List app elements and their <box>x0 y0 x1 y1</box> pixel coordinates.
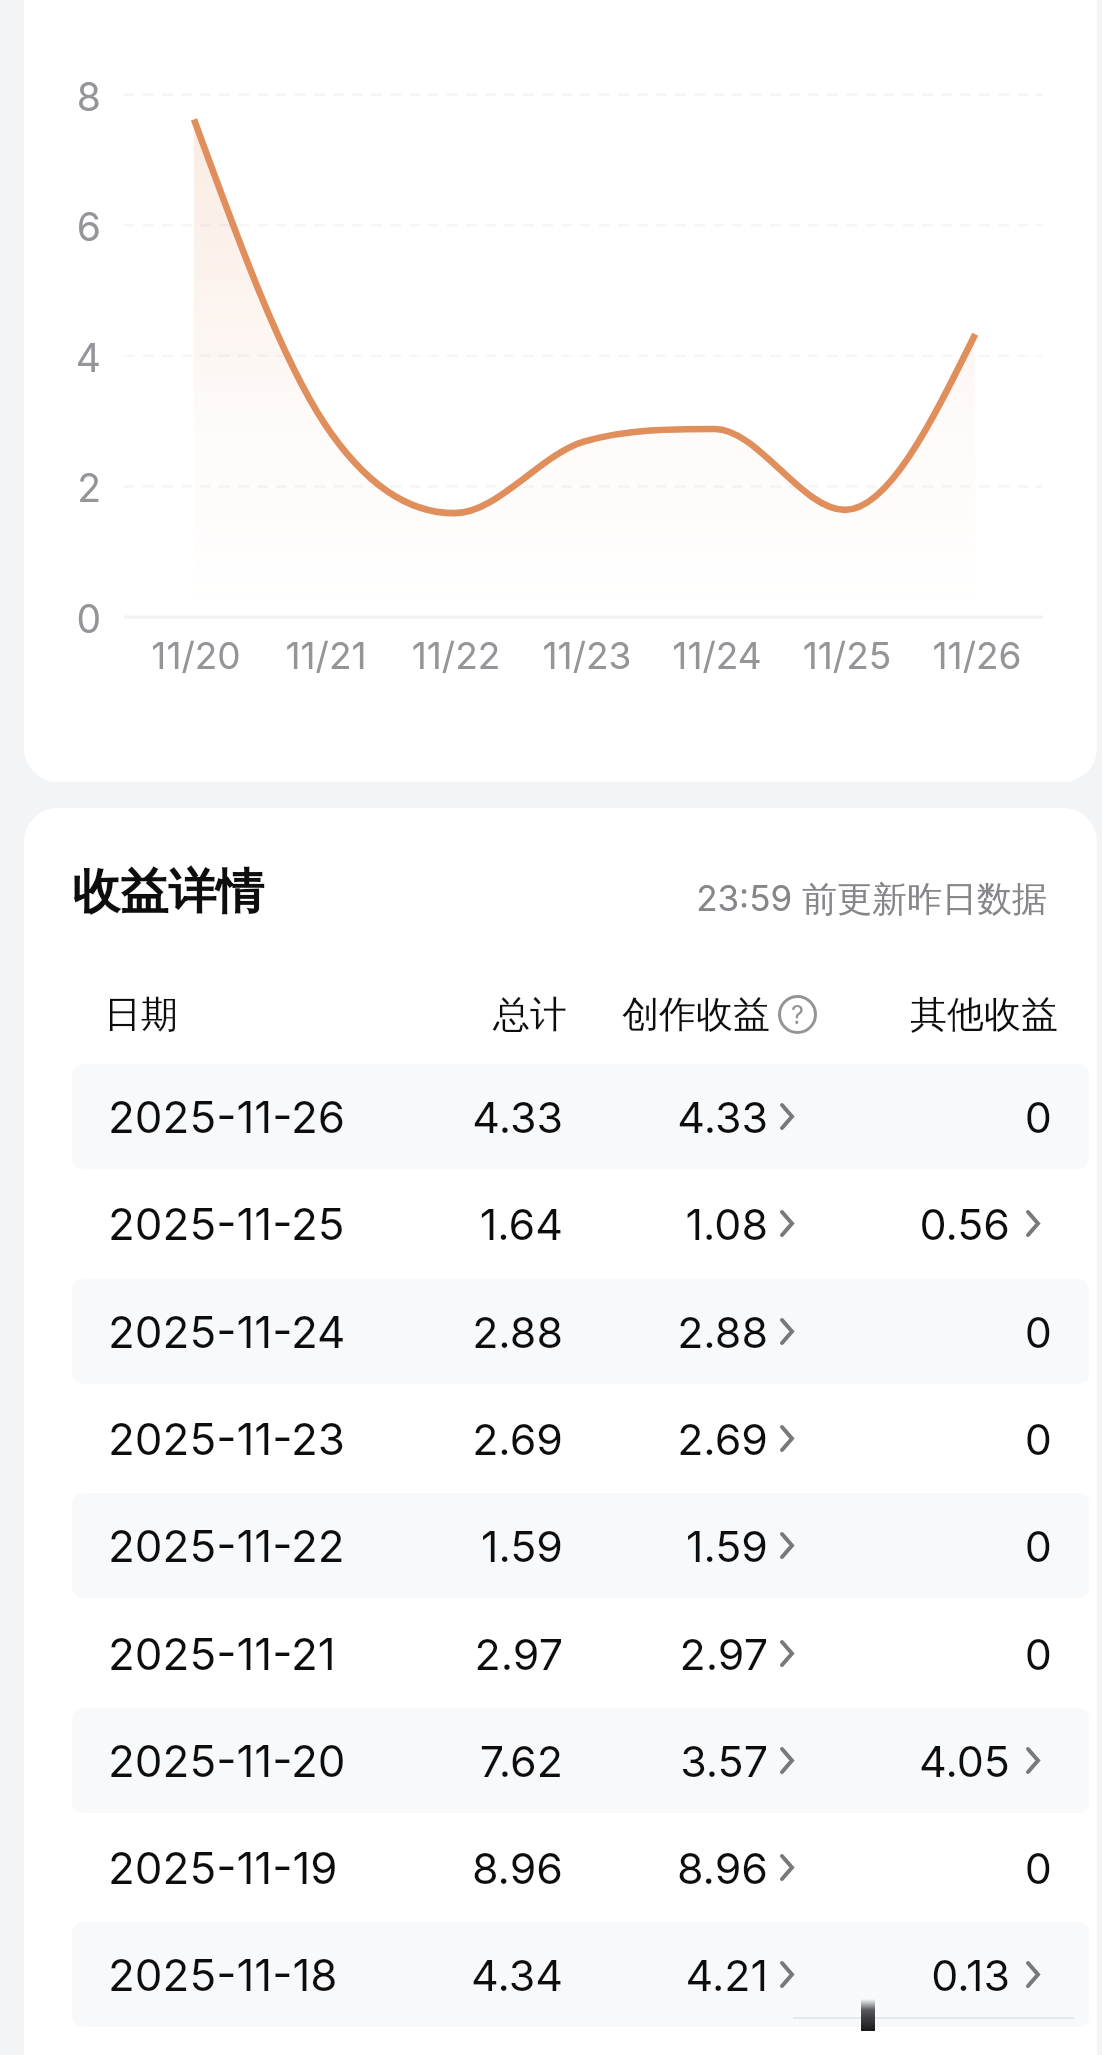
button[interactable]: 2025-11-21 <box>72 1601 1089 1706</box>
staticText: 4.05 <box>610 1735 1010 1787</box>
button[interactable]: 2025-11-19 <box>72 1815 1089 1920</box>
staticText: 0 <box>652 1413 1052 1465</box>
staticText: 0.13 <box>610 1949 1010 2001</box>
staticText: 4.33 <box>163 1091 563 1143</box>
staticText: 11/22 <box>386 633 526 678</box>
button[interactable]: 2025-11-23 <box>72 1386 1089 1491</box>
staticText: 0 <box>652 1628 1052 1680</box>
staticText: 2.69 <box>368 1413 768 1465</box>
staticText: 8.96 <box>368 1842 768 1894</box>
staticText: 2025-11-22 <box>108 1519 345 1572</box>
staticText: 2025-11-26 <box>108 1090 346 1143</box>
staticText: 4.21 <box>368 1949 768 2001</box>
staticText: 2.97 <box>163 1628 563 1680</box>
staticText: 2.88 <box>163 1306 563 1358</box>
staticText: 2025-11-24 <box>108 1305 346 1358</box>
staticText: 23:59 前更新昨日数据 <box>600 877 1047 921</box>
staticText: 总计 <box>167 991 567 1038</box>
button[interactable]: 2025-11-18 <box>72 1922 1089 2027</box>
staticText: 日期 <box>104 991 178 1038</box>
staticText: 4.33 <box>368 1091 768 1143</box>
staticText: 2025-11-18 <box>108 1948 338 2001</box>
button[interactable]: 2025-11-20 <box>72 1708 1089 1813</box>
staticText: 11/23 <box>517 633 657 678</box>
staticText: 11/24 <box>647 633 787 678</box>
staticText: 0 <box>652 1842 1052 1894</box>
staticText: 11/25 <box>777 633 917 678</box>
staticText: 1.64 <box>163 1198 563 1250</box>
staticText: 2025-11-21 <box>108 1627 336 1680</box>
staticText: 其他收益 <box>658 991 1058 1038</box>
staticText: 2025-11-19 <box>108 1841 338 1894</box>
staticText: 8 <box>41 73 101 120</box>
staticText: 2.97 <box>368 1628 768 1680</box>
staticText: 3.57 <box>368 1735 768 1787</box>
staticText: 11/20 <box>126 633 266 678</box>
button[interactable]: 创作收益说明 <box>778 995 817 1034</box>
staticText: 11/26 <box>907 633 1047 678</box>
button[interactable]: 2025-11-26 <box>72 1064 1089 1169</box>
staticText: 4 <box>41 334 101 381</box>
staticText: 0.56 <box>610 1198 1010 1250</box>
staticText: 4.34 <box>163 1949 563 2001</box>
staticText: ? <box>791 1000 804 1030</box>
staticText: 2025-11-25 <box>108 1197 345 1250</box>
staticText: 0 <box>652 1091 1052 1143</box>
staticText: 11/21 <box>256 633 396 678</box>
staticText: 收益详情 <box>72 862 264 922</box>
staticText: 1.59 <box>163 1520 563 1572</box>
staticText: 6 <box>41 203 101 250</box>
staticText: 2025-11-23 <box>108 1412 345 1465</box>
staticText: 2 <box>41 464 101 511</box>
staticText: 创作收益 <box>370 991 770 1038</box>
staticText: 8.96 <box>163 1842 563 1894</box>
staticText: 1.59 <box>368 1520 768 1572</box>
staticText: 2.88 <box>368 1306 768 1358</box>
staticText: 2.69 <box>163 1413 563 1465</box>
button[interactable]: 2025-11-22 <box>72 1493 1089 1598</box>
staticText: 7.62 <box>163 1735 563 1787</box>
staticText: 0 <box>652 1306 1052 1358</box>
staticText: 0 <box>652 1520 1052 1572</box>
staticText: 2025-11-20 <box>108 1734 346 1787</box>
staticText: 1.08 <box>368 1198 768 1250</box>
staticText: 0 <box>41 595 101 642</box>
button[interactable]: 2025-11-24 <box>72 1279 1089 1384</box>
button[interactable]: 2025-11-25 <box>72 1171 1089 1276</box>
